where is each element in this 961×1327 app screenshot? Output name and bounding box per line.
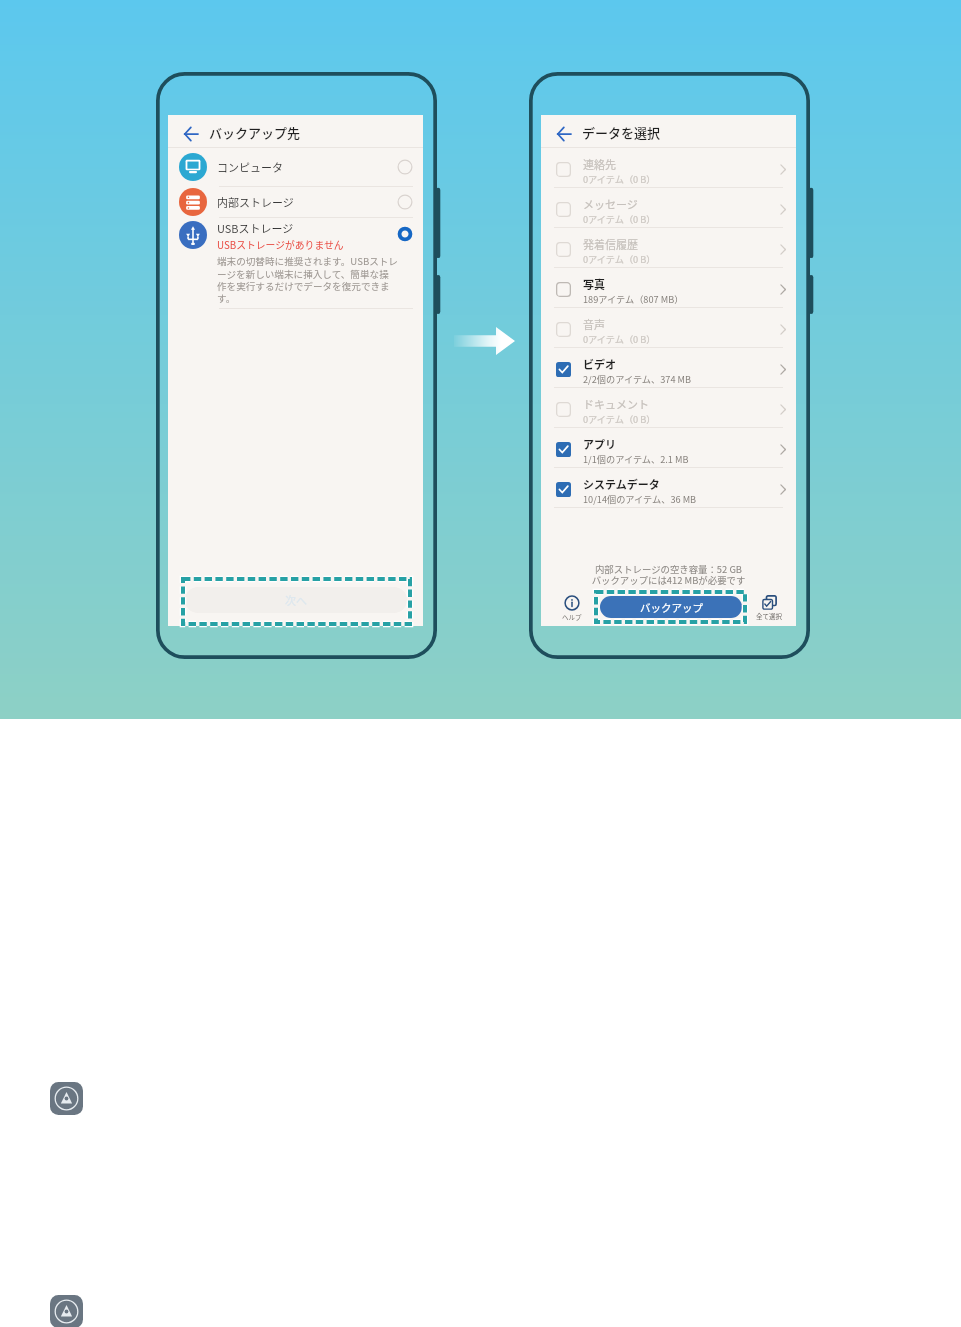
staticText: 2/2個のアイテム、374 MB [583, 372, 692, 385]
staticText: 0アイテム（0 B） [583, 252, 656, 265]
button[interactable]: システムデータ [541, 468, 796, 508]
staticText: バックアップ [640, 600, 703, 615]
staticText: USBストレージがありません [217, 238, 344, 252]
button[interactable]: メッセージ [541, 188, 796, 228]
staticText: 写真 [583, 276, 605, 292]
button[interactable]: 音声 [541, 308, 796, 348]
other: Next step [454, 325, 515, 357]
staticText: バックアップには412 MBが必要です [541, 573, 796, 587]
button[interactable]: アプリ [541, 428, 796, 468]
staticText: 次へ [285, 592, 307, 608]
button[interactable]: 全て選択 [752, 595, 786, 620]
staticText: ヘルプ [562, 612, 582, 621]
staticText: 0アイテム（0 B） [583, 212, 656, 225]
staticText: バックアップ先 [209, 123, 301, 142]
staticText: データを選択 [582, 123, 661, 142]
button[interactable]: 発着信履歴 [541, 228, 796, 268]
button[interactable]: USBストレージ [168, 218, 423, 309]
staticText: 端末の切替時に推奨されます。USBストレージを新しい端末に挿入して、簡単な操作を… [217, 254, 398, 305]
staticText: 0アイテム（0 B） [583, 412, 656, 425]
button[interactable]: 連絡先 [541, 148, 796, 188]
staticText: 内部ストレージ [217, 194, 294, 210]
staticText: コンピュータ [217, 159, 283, 175]
staticText: 189アイテム（807 MB） [583, 292, 684, 305]
button[interactable]: 写真 [541, 268, 796, 308]
button[interactable]: 内部ストレージ [168, 187, 423, 218]
staticText: USBストレージ [217, 220, 294, 236]
button[interactable]: App badge [50, 1082, 83, 1115]
staticText: ビデオ [583, 356, 616, 372]
staticText: 10/14個のアイテム、36 MB [583, 492, 697, 505]
staticText: 全て選択 [756, 611, 782, 620]
button[interactable]: Back [552, 122, 576, 146]
button[interactable]: ドキュメント [541, 388, 796, 428]
staticText: メッセージ [583, 196, 638, 212]
staticText: 内部ストレージの空き容量：52 GB [541, 562, 796, 576]
staticText: 0アイテム（0 B） [583, 172, 656, 185]
button[interactable]: バックアップ [600, 596, 742, 618]
staticText: 連絡先 [583, 156, 616, 172]
staticText: システムデータ [583, 476, 660, 492]
button[interactable]: ヘルプ [555, 595, 589, 621]
button[interactable]: Back [179, 122, 203, 146]
staticText: ドキュメント [583, 396, 649, 412]
button[interactable]: ビデオ [541, 348, 796, 388]
staticText: 1/1個のアイテム、2.1 MB [583, 452, 689, 465]
staticText: 発着信履歴 [583, 236, 638, 252]
staticText: アプリ [583, 436, 616, 452]
button[interactable]: コンピュータ [168, 148, 423, 187]
button[interactable]: App badge [50, 1295, 83, 1327]
staticText: 0アイテム（0 B） [583, 332, 656, 345]
staticText: 音声 [583, 316, 605, 332]
